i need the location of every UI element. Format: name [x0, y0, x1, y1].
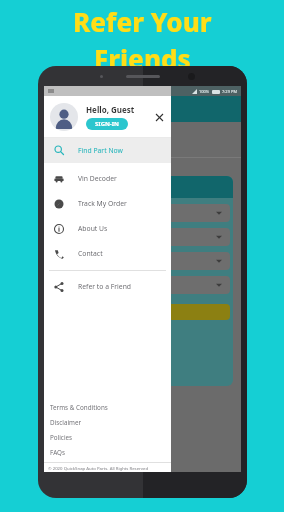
button[interactable]: About Us	[44, 216, 171, 241]
staticText: Find Part Now	[78, 146, 123, 155]
staticText: Refer to a Friend	[78, 282, 132, 291]
button[interactable]: FAQs	[50, 445, 171, 460]
staticText: Vin Decoder	[78, 174, 117, 183]
button[interactable]: Track My Order	[44, 191, 171, 216]
staticText: Refer Your	[73, 4, 212, 39]
button[interactable]: Refer to a Friend	[44, 274, 171, 299]
staticText: 7:29 PM	[222, 89, 238, 94]
staticText: About Us	[78, 224, 108, 233]
staticText: 100%	[199, 89, 210, 94]
button[interactable]: Disclaimer	[50, 415, 171, 430]
staticText: FAQs	[50, 448, 65, 457]
staticText: Friends	[94, 41, 191, 76]
button[interactable]: Terms & Conditions	[50, 400, 171, 415]
button[interactable]: Vin Decoder	[44, 166, 171, 191]
button[interactable]: Close	[151, 109, 167, 125]
button[interactable]: SIGN-IN	[86, 118, 128, 130]
staticText: Track My Order	[78, 199, 127, 208]
staticText: Disclaimer	[50, 418, 82, 427]
button[interactable]: Policies	[50, 430, 171, 445]
button[interactable]: Contact	[44, 241, 171, 266]
button[interactable]: Find Part Now	[44, 138, 171, 162]
staticText: Policies	[50, 433, 73, 442]
staticText: SIGN-IN	[95, 120, 119, 128]
staticText: © 2020 QuickSnap Auto Parts. All Rights …	[48, 465, 149, 471]
staticText: Contact	[78, 249, 103, 258]
staticText: Terms & Conditions	[50, 403, 108, 412]
staticText: Hello, Guest	[86, 104, 135, 115]
